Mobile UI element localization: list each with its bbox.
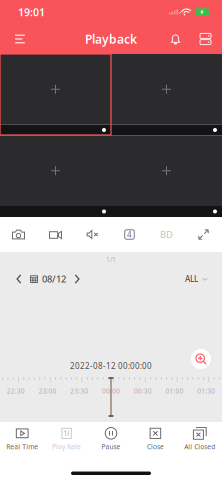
button[interactable]: ALL: [185, 267, 222, 291]
staticText: 23:30: [70, 387, 88, 395]
staticText: 01:00: [165, 387, 183, 395]
button[interactable]: Play Rate: [44, 422, 89, 456]
button[interactable]: Real Time: [0, 422, 44, 456]
button[interactable]: Record: [37, 217, 74, 252]
button[interactable]: Devices: [189, 25, 222, 53]
staticText: 23:00: [39, 387, 57, 395]
staticText: Play Rate: [52, 442, 81, 451]
staticText: 01:30: [197, 387, 215, 395]
staticText: 08/12: [42, 273, 66, 285]
button[interactable]: Previous day: [8, 267, 30, 291]
staticText: Real Time: [6, 442, 38, 451]
staticText: 00:30: [134, 387, 152, 395]
button[interactable]: Next day: [66, 267, 88, 291]
staticText: 22:30: [7, 387, 25, 395]
button[interactable]: 08/12: [30, 267, 66, 291]
staticText: All Closed: [184, 442, 215, 451]
staticText: BD: [160, 228, 173, 241]
staticText: 19:01: [18, 5, 45, 19]
button[interactable]: Close: [133, 422, 178, 456]
staticText: 1/1: [106, 255, 116, 264]
staticText: Close: [147, 442, 164, 451]
button[interactable]: BD: [148, 217, 185, 252]
button[interactable]: Mute: [74, 217, 111, 252]
button[interactable]: Menu: [0, 25, 40, 53]
button[interactable]: Full screen: [185, 217, 222, 252]
staticText: ALL: [185, 274, 198, 284]
staticText: 00:00: [102, 387, 120, 395]
button[interactable]: Snapshot: [0, 217, 37, 252]
button[interactable]: Alerts: [162, 25, 189, 53]
staticText: Playback: [85, 31, 137, 47]
staticText: 4: [127, 229, 132, 240]
button[interactable]: Pause: [89, 422, 133, 456]
staticText: 2022-08-12 00:00:00: [70, 361, 152, 371]
button[interactable]: Split layout: [111, 217, 148, 252]
button[interactable]: All Closed: [178, 422, 222, 456]
button[interactable]: Zoom in: [191, 349, 211, 369]
staticText: Pause: [101, 442, 120, 451]
